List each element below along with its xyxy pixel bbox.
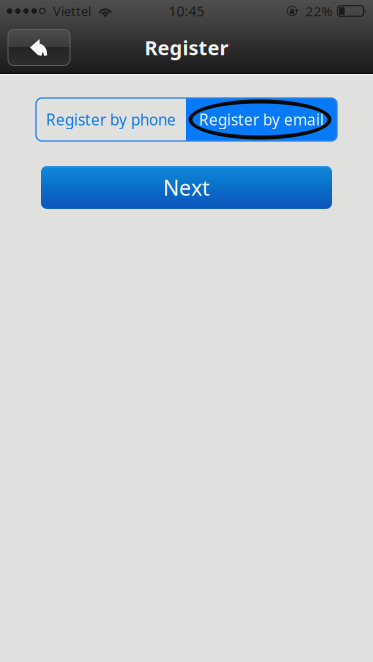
staticText: Register by email: [199, 109, 324, 130]
staticText: Register: [144, 34, 228, 61]
staticText: Next: [163, 173, 210, 202]
staticText: Register by phone: [46, 109, 176, 130]
staticText: 10:45: [168, 1, 204, 21]
staticText: Viettel: [53, 2, 91, 20]
button[interactable]: Register by phone: [36, 98, 186, 141]
button[interactable]: Register by email: [186, 98, 337, 141]
staticText: 22%: [305, 2, 332, 20]
button[interactable]: Back: [8, 29, 70, 65]
button[interactable]: Next: [41, 166, 332, 209]
